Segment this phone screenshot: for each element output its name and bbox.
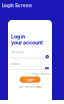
staticText: Password <box>11 63 20 66</box>
staticText: Login Screen <box>2 3 32 8</box>
staticText: your account <box>11 40 43 46</box>
staticText: Your Number <box>11 51 24 54</box>
button[interactable]: Login <box>19 76 40 83</box>
button[interactable]: Forgot Password <box>32 72 49 75</box>
staticText: Here <box>36 85 41 88</box>
button[interactable]: Here <box>36 85 41 88</box>
staticText: Login <box>25 78 34 82</box>
staticText: Forgot Password <box>32 72 49 75</box>
staticText: Log in <box>11 33 25 40</box>
staticText: don't have an account? <box>19 85 36 88</box>
